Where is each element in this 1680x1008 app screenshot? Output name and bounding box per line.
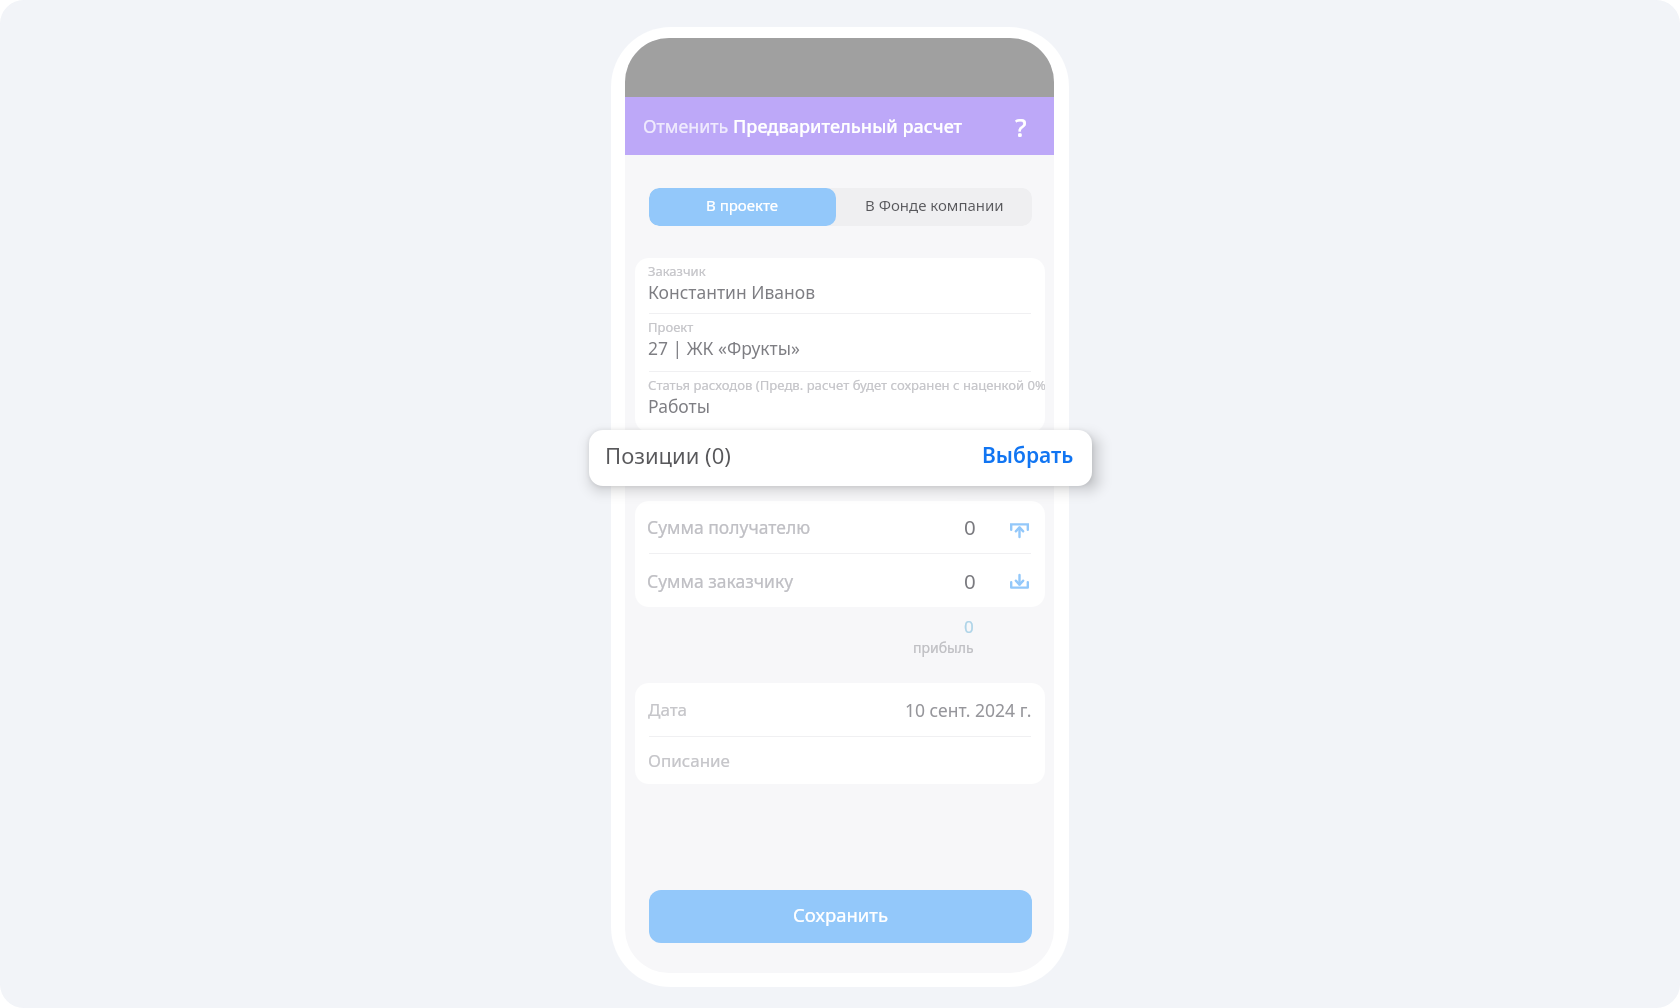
button[interactable]: Описание: [635, 737, 1045, 784]
staticText: 0: [964, 615, 974, 638]
staticText: Сохранить: [793, 902, 888, 927]
staticText: Сумма заказчику: [647, 569, 794, 593]
staticText: 0: [964, 513, 976, 541]
staticText: Предварительный расчет: [733, 114, 963, 139]
button[interactable]: Проект: [635, 314, 1045, 371]
button[interactable]: Позиции (0): [589, 430, 1092, 486]
staticText: Описание: [648, 749, 730, 772]
button[interactable]: Дата: [635, 683, 1045, 736]
staticText: В проекте: [706, 195, 779, 215]
staticText: Проект: [648, 318, 694, 336]
staticText: ?: [1015, 109, 1027, 144]
staticText: Статья расходов (Предв. расчет будет сох…: [648, 376, 1045, 394]
button[interactable]: Upload amount: [1005, 514, 1031, 540]
button[interactable]: Статья расходов (Предв. расчет будет сох…: [635, 372, 1045, 429]
staticText: Выбрать: [982, 441, 1074, 470]
button[interactable]: Сумма получателю: [635, 501, 1045, 553]
staticText: Работы: [648, 394, 710, 418]
button[interactable]: Сумма заказчику: [635, 554, 1045, 607]
staticText: 10 сент. 2024 г.: [905, 698, 1032, 722]
staticText: Дата: [648, 698, 688, 721]
staticText: 0: [964, 567, 976, 595]
button[interactable]: Отменить: [625, 106, 731, 146]
button[interactable]: Help: [999, 104, 1043, 148]
staticText: прибыль: [913, 638, 974, 657]
staticText: Сумма получателю: [647, 515, 811, 539]
staticText: Константин Иванов: [648, 280, 816, 304]
button[interactable]: В Фонде компании: [836, 188, 1032, 226]
staticText: Заказчик: [648, 262, 706, 280]
button[interactable]: Сохранить: [649, 890, 1032, 943]
button[interactable]: Download amount: [1005, 568, 1031, 594]
button[interactable]: Заказчик: [635, 258, 1045, 313]
staticText: Позиции (0): [605, 440, 731, 470]
staticText: Отменить: [643, 114, 729, 138]
staticText: 27 | ЖК «Фрукты»: [648, 336, 800, 360]
staticText: В Фонде компании: [865, 195, 1004, 215]
button[interactable]: В проекте: [649, 188, 836, 226]
